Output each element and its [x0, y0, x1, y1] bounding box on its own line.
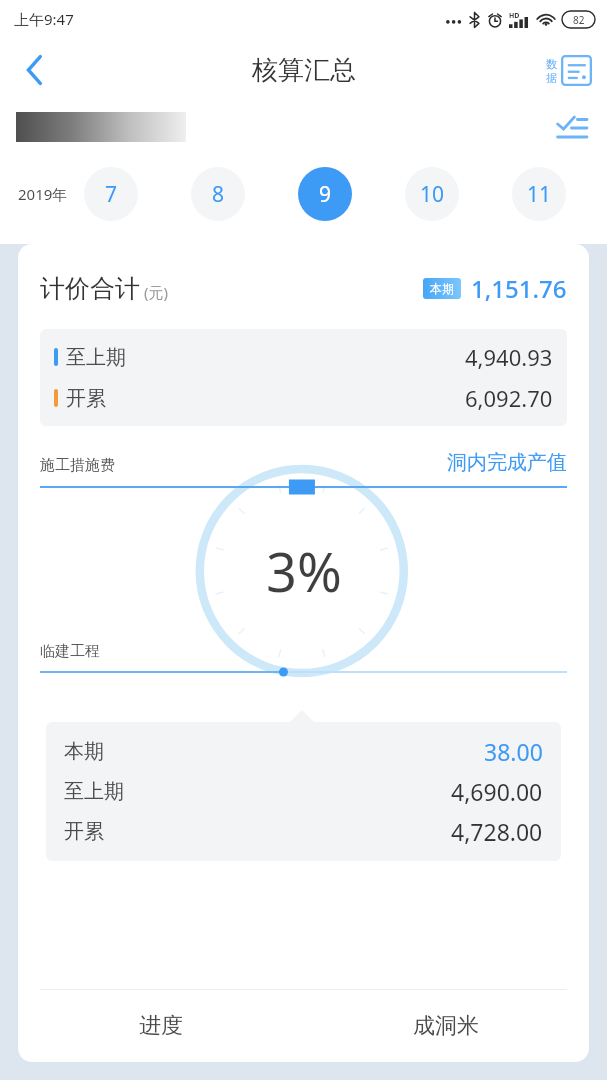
staticText: 数 [546, 57, 557, 71]
button[interactable]: 进度 [18, 990, 303, 1062]
button[interactable]: 8 [191, 167, 245, 221]
button[interactable]: 11 [512, 167, 566, 221]
staticText: 7 [105, 180, 118, 209]
staticText: 临建工程 [40, 642, 100, 661]
staticText: 82 [573, 13, 585, 27]
button[interactable]: Data [541, 50, 597, 91]
staticText: 本期 [64, 739, 104, 764]
staticText: 6,092.70 [465, 383, 553, 413]
button[interactable]: 10 [405, 167, 459, 221]
button[interactable]: Slider 2 [40, 666, 567, 678]
staticText: 1,151.76 [471, 272, 567, 305]
staticText: 开累 [66, 386, 106, 411]
staticText: 核算汇总 [252, 54, 356, 87]
staticText: 计价合计 [40, 273, 140, 304]
staticText: 成洞米 [413, 1012, 479, 1040]
staticText: 洞内完成产值 [447, 450, 567, 475]
staticText: 38.00 [484, 736, 543, 767]
staticText: 开累 [64, 819, 104, 844]
button[interactable]: Checklist [551, 106, 593, 148]
staticText: (元) [144, 282, 169, 302]
staticText: 至上期 [64, 779, 124, 804]
staticText: 2019年 [18, 184, 68, 204]
staticText: 至上期 [66, 345, 126, 370]
button[interactable]: Project name [16, 112, 186, 142]
staticText: 9 [319, 180, 332, 209]
staticText: 4,690.00 [451, 776, 543, 807]
staticText: 上午9:47 [14, 9, 74, 29]
staticText: 10 [420, 180, 445, 209]
staticText: 4,728.00 [451, 816, 543, 847]
staticText: 本期 [430, 281, 454, 296]
button[interactable]: 7 [84, 167, 138, 221]
button[interactable]: 9 [298, 167, 352, 221]
button[interactable]: Slider 1 [40, 479, 567, 495]
staticText: 据 [546, 71, 557, 85]
staticText: 8 [212, 180, 225, 209]
staticText: 进度 [139, 1012, 183, 1040]
staticText: HD [509, 11, 520, 21]
staticText: 施工措施费 [40, 456, 115, 475]
button[interactable]: 成洞米 [303, 990, 589, 1062]
staticText: 3% [266, 534, 342, 608]
staticText: 4,940.93 [465, 342, 553, 372]
staticText: 11 [527, 180, 552, 209]
button[interactable]: Back [6, 41, 64, 99]
